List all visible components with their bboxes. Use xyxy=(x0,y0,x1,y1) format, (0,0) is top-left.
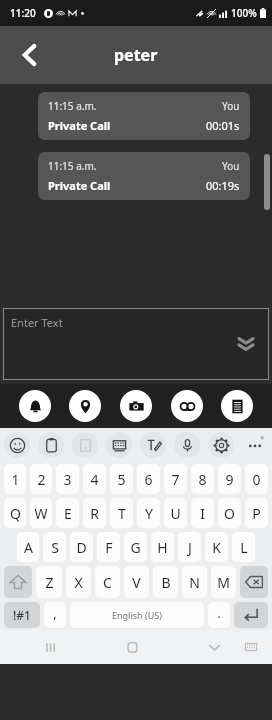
button[interactable]: Settings xyxy=(208,432,234,458)
button[interactable]: 6 xyxy=(137,464,160,494)
button[interactable]: K xyxy=(205,532,228,562)
staticText: 11:15 a.m. xyxy=(48,159,97,173)
button[interactable]: 4 xyxy=(83,464,106,494)
staticText: 0 xyxy=(252,470,261,489)
staticText: peter xyxy=(114,44,158,66)
staticText: 2 xyxy=(37,470,46,489)
button[interactable]: 0 xyxy=(245,464,268,494)
button[interactable]: S xyxy=(43,532,66,562)
staticText: P xyxy=(252,504,261,523)
button[interactable]: L xyxy=(232,532,255,562)
button[interactable]: Enter xyxy=(234,602,268,628)
button[interactable]: Recents xyxy=(34,631,66,663)
staticText: Private Call xyxy=(48,178,111,193)
button[interactable]: B xyxy=(153,566,178,598)
staticText: H xyxy=(157,538,168,557)
button[interactable]: , xyxy=(44,602,66,628)
button[interactable]: A xyxy=(17,532,39,562)
staticText: 00:01s xyxy=(206,118,240,133)
button[interactable]: M xyxy=(211,566,236,598)
button[interactable]: T xyxy=(110,498,133,528)
button[interactable]: Home xyxy=(116,631,148,663)
staticText: I xyxy=(200,504,205,523)
button[interactable]: O xyxy=(218,498,241,528)
button[interactable]: Alert xyxy=(19,390,51,422)
staticText: 11:15 a.m. xyxy=(48,99,97,113)
button[interactable]: 5 xyxy=(110,464,133,494)
button[interactable]: H xyxy=(151,532,174,562)
staticText: 5 xyxy=(117,470,126,489)
button[interactable]: F xyxy=(97,532,120,562)
button[interactable]: 11:15 a.m. xyxy=(38,92,250,140)
button[interactable]: W xyxy=(30,498,52,528)
button[interactable]: I xyxy=(191,498,214,528)
staticText: 6 xyxy=(144,470,153,489)
button[interactable]: Hide keyboard xyxy=(236,632,266,662)
button[interactable]: English (US) xyxy=(70,602,204,628)
button[interactable]: Voice input xyxy=(174,432,200,458)
button[interactable]: X xyxy=(66,566,91,598)
button[interactable]: Enter Text xyxy=(3,308,269,380)
staticText: N xyxy=(189,573,200,592)
button[interactable]: Y xyxy=(137,498,160,528)
staticText: J xyxy=(188,538,192,557)
staticText: U xyxy=(170,504,181,523)
button[interactable]: Shift xyxy=(4,566,32,598)
button[interactable]: More xyxy=(242,432,268,458)
staticText: , xyxy=(53,604,57,622)
button[interactable]: 11:15 a.m. xyxy=(38,152,250,200)
staticText: C xyxy=(103,573,112,592)
staticText: S xyxy=(51,538,59,557)
button[interactable]: U xyxy=(164,498,187,528)
staticText: K xyxy=(212,538,221,557)
staticText: L xyxy=(240,538,248,557)
button[interactable]: Backspace xyxy=(240,566,268,598)
staticText: 4 xyxy=(90,470,99,489)
button[interactable]: . xyxy=(208,602,230,628)
button[interactable]: C xyxy=(95,566,120,598)
staticText: 11:20 xyxy=(10,6,36,20)
button[interactable]: Split xyxy=(72,432,98,458)
button[interactable]: Emoji xyxy=(4,432,30,458)
staticText: 00:19s xyxy=(206,178,240,193)
staticText: A xyxy=(24,538,33,557)
button[interactable]: 8 xyxy=(191,464,214,494)
button[interactable]: J xyxy=(178,532,201,562)
button[interactable]: 1 xyxy=(4,464,26,494)
button[interactable]: Q xyxy=(4,498,26,528)
button[interactable]: Voicemail xyxy=(171,390,203,422)
staticText: 7 xyxy=(171,470,180,489)
button[interactable]: Notes xyxy=(221,390,253,422)
button[interactable]: Z xyxy=(36,566,62,598)
button[interactable]: Handwriting xyxy=(140,432,166,458)
button[interactable]: Back xyxy=(8,33,52,77)
button[interactable]: 7 xyxy=(164,464,187,494)
staticText: 8 xyxy=(198,470,207,489)
button[interactable]: R xyxy=(83,498,106,528)
button[interactable]: !#1 xyxy=(4,602,40,628)
button[interactable]: 3 xyxy=(56,464,79,494)
button[interactable]: Camera xyxy=(120,390,152,422)
button[interactable]: 2 xyxy=(30,464,52,494)
staticText: Y xyxy=(145,504,153,523)
button[interactable]: Back xyxy=(198,631,230,663)
staticText: English (US) xyxy=(112,609,162,621)
staticText: R xyxy=(90,504,99,523)
button[interactable]: V xyxy=(124,566,149,598)
staticText: W xyxy=(34,504,48,523)
button[interactable]: Clipboard xyxy=(38,432,64,458)
button[interactable]: P xyxy=(245,498,268,528)
button[interactable]: E xyxy=(56,498,79,528)
staticText: You xyxy=(222,159,240,173)
button[interactable]: N xyxy=(182,566,207,598)
button[interactable]: Location xyxy=(69,390,101,422)
staticText: O xyxy=(224,504,235,523)
button[interactable]: 9 xyxy=(218,464,241,494)
staticText: 1 xyxy=(11,470,20,489)
button[interactable]: D xyxy=(70,532,93,562)
button[interactable]: G xyxy=(124,532,147,562)
staticText: T xyxy=(118,504,126,523)
button[interactable]: Keyboard mode xyxy=(106,432,132,458)
button[interactable]: Expand xyxy=(231,329,261,359)
staticText: Z xyxy=(45,573,54,592)
